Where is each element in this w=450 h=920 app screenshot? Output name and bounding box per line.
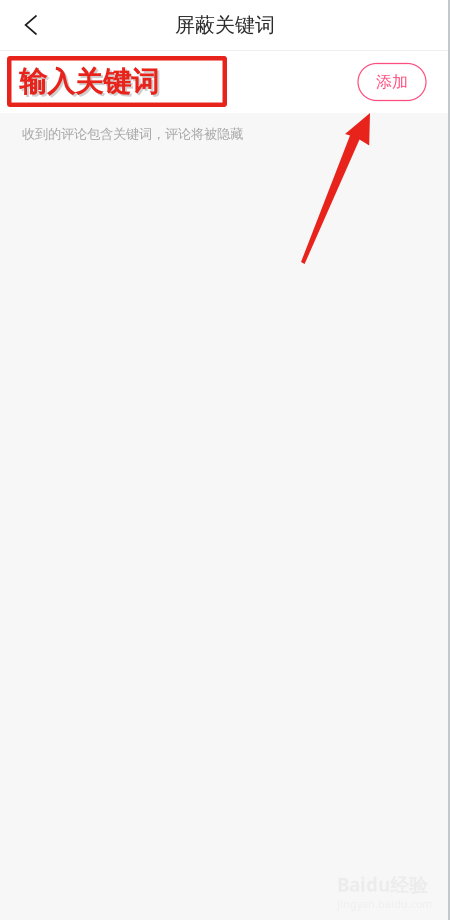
staticText: 屏蔽关键词 bbox=[175, 13, 275, 37]
button[interactable]: 添加 bbox=[358, 63, 426, 100]
staticText: 输入关键词 bbox=[21, 67, 161, 101]
staticText: 输入关键词 bbox=[19, 65, 159, 99]
staticText: 添加 bbox=[376, 72, 408, 92]
staticText: 收到的评论包含关键词，评论将被隐藏 bbox=[22, 126, 243, 142]
button[interactable]: Back bbox=[0, 0, 62, 50]
staticText: Baidu经验 bbox=[337, 872, 428, 897]
